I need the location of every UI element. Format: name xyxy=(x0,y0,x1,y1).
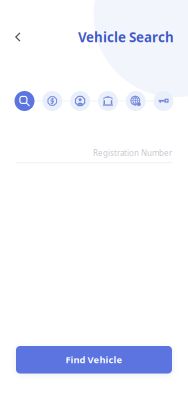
button[interactable]: Find Vehicle xyxy=(16,346,172,373)
button[interactable]: Keys xyxy=(153,91,173,111)
button[interactable]: Back xyxy=(15,24,37,50)
button[interactable]: Import xyxy=(126,91,146,111)
staticText: Registration Number xyxy=(93,148,172,158)
button[interactable]: Finance xyxy=(98,91,118,111)
button[interactable]: Search xyxy=(14,91,34,111)
staticText: Vehicle Search xyxy=(78,28,174,46)
button[interactable]: Owner xyxy=(70,91,90,111)
button[interactable]: Valuation xyxy=(42,91,62,111)
button[interactable]: Registration Number xyxy=(16,144,172,163)
staticText: Find Vehicle xyxy=(65,354,122,366)
